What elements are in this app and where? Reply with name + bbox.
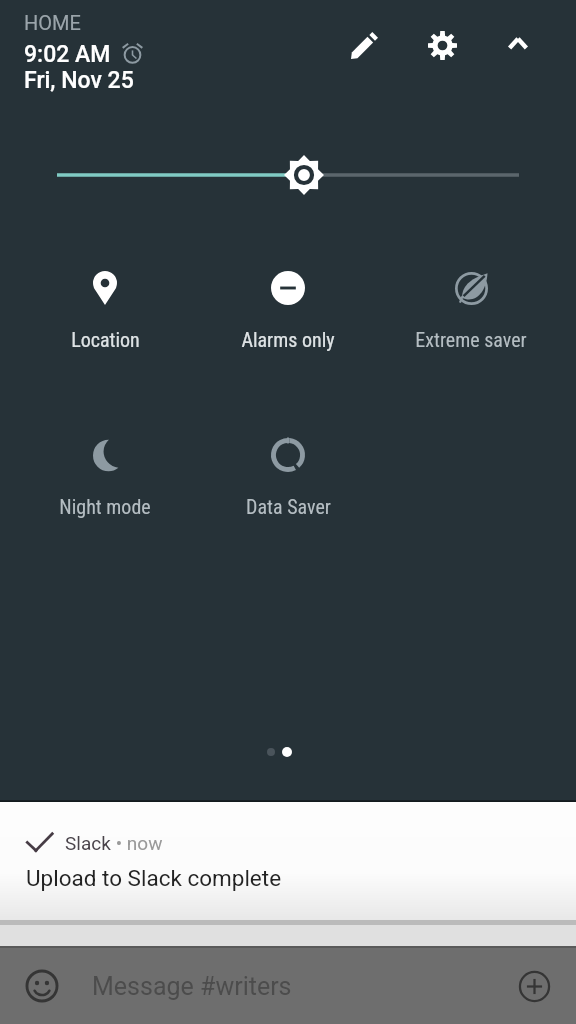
button[interactable]: Settings [416,19,468,71]
button[interactable]: Location [25,258,185,351]
staticText: • now [111,832,163,854]
staticText: Location [71,328,140,351]
staticText: Message #writers [92,972,503,1001]
button[interactable]: Collapse [492,18,544,70]
staticText: Upload to Slack complete [26,865,282,891]
button[interactable]: Brightness [0,150,576,200]
staticText: Fri, Nov 25 [24,67,134,94]
button[interactable]: Page indicator [267,747,292,757]
staticText: Alarms only [241,328,335,351]
staticText: 9:02 AM [24,41,111,68]
button[interactable]: Extreme saver [391,258,551,351]
staticText: Extreme saver [415,328,527,351]
staticText: Night mode [59,495,151,518]
button[interactable]: Slack [0,802,576,920]
button[interactable]: Edit [338,19,390,71]
staticText: HOME [24,11,81,34]
button[interactable]: Emoji [11,955,73,1017]
staticText: Slack [65,832,111,854]
button[interactable]: Night mode [25,425,185,518]
button[interactable]: Data Saver [208,425,368,518]
button[interactable]: Alarms only [208,258,368,351]
button[interactable]: Add attachment [503,955,565,1017]
staticText: Data Saver [246,495,331,518]
